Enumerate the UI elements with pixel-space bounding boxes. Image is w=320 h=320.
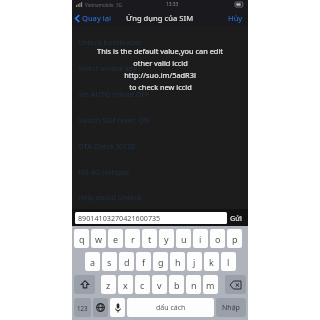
button[interactable]: x xyxy=(118,275,133,294)
button[interactable]: v xyxy=(152,275,167,294)
staticText: j xyxy=(193,256,196,268)
staticText: b xyxy=(174,279,180,291)
button[interactable]: l xyxy=(221,252,236,271)
button[interactable]: Delete xyxy=(225,275,246,294)
button[interactable]: 89014103270421600735 xyxy=(75,212,227,224)
button[interactable]: b xyxy=(169,275,184,294)
button[interactable]: i xyxy=(193,229,208,248)
button[interactable]: Nhập xyxy=(216,298,246,317)
staticText: d xyxy=(124,256,130,268)
button[interactable]: Select unlock key xyxy=(72,55,248,81)
staticText: other valid iccid xyxy=(133,58,188,68)
button[interactable]: e xyxy=(108,229,123,248)
button[interactable]: Shift xyxy=(74,275,95,294)
button[interactable]: Gửi xyxy=(227,211,245,225)
button[interactable]: Help about Unlock xyxy=(72,185,248,209)
staticText: r xyxy=(131,233,135,245)
staticText: Switch SIM reset: ON xyxy=(78,115,150,125)
staticText: 3G xyxy=(116,2,122,8)
button[interactable]: q xyxy=(74,229,89,248)
button[interactable]: f xyxy=(136,252,151,271)
staticText: Help about Unlock xyxy=(78,192,142,202)
staticText: Unlock bootloader xyxy=(78,37,142,47)
button[interactable]: m xyxy=(203,275,218,294)
staticText: Hủy xyxy=(228,13,243,23)
button[interactable]: z xyxy=(101,275,116,294)
staticText: z xyxy=(106,279,111,291)
staticText: to check new iccid xyxy=(129,82,192,92)
staticText: 123 xyxy=(77,304,88,312)
staticText: x xyxy=(123,279,128,291)
button[interactable]: u xyxy=(176,229,191,248)
button[interactable]: Set AUTO reload OFF xyxy=(72,81,248,107)
staticText: 13:33 xyxy=(166,1,179,8)
staticText: h xyxy=(175,256,181,268)
button[interactable]: p xyxy=(227,229,242,248)
staticText: OTA Check ICCID xyxy=(78,141,136,151)
button[interactable]: j xyxy=(187,252,202,271)
staticText: This is the default value,you can edit xyxy=(97,46,223,56)
staticText: m xyxy=(206,279,215,291)
button[interactable]: h xyxy=(170,252,185,271)
staticText: Select unlock key xyxy=(78,63,137,73)
staticText: Gửi xyxy=(230,213,242,223)
staticText: l xyxy=(227,256,230,268)
staticText: p xyxy=(232,233,238,245)
staticText: k xyxy=(209,256,214,268)
staticText: Quay lại xyxy=(82,13,111,23)
button[interactable]: y xyxy=(159,229,174,248)
staticText: c xyxy=(140,279,145,291)
staticText: u xyxy=(181,233,187,245)
staticText: FIX 4G Hotspot xyxy=(78,167,130,177)
button[interactable]: r xyxy=(125,229,140,248)
staticText: g xyxy=(158,256,164,268)
button[interactable]: w xyxy=(91,229,106,248)
button[interactable]: Unlock bootloader xyxy=(72,29,248,55)
button[interactable]: Quay lại xyxy=(72,11,115,25)
button[interactable]: Hủy xyxy=(223,11,248,25)
button[interactable]: t xyxy=(142,229,157,248)
staticText: y xyxy=(164,233,169,245)
staticText: 89014103270421600735 xyxy=(78,213,161,223)
button[interactable]: a xyxy=(85,252,100,271)
staticText: a xyxy=(90,256,96,268)
staticText: t xyxy=(148,233,152,245)
staticText: v xyxy=(157,279,162,291)
button[interactable]: dấu cách xyxy=(127,298,214,317)
staticText: o xyxy=(215,233,221,245)
staticText: n xyxy=(191,279,197,291)
button[interactable]: 123 xyxy=(74,298,91,317)
staticText: w xyxy=(95,233,103,245)
button[interactable]: o xyxy=(210,229,225,248)
staticText: e xyxy=(113,233,119,245)
button[interactable]: Dictate xyxy=(110,298,125,317)
button[interactable]: n xyxy=(186,275,201,294)
staticText: http://suo.im/5adR3l xyxy=(124,70,196,80)
staticText: q xyxy=(79,233,85,245)
button[interactable]: OTA Check ICCID xyxy=(72,133,248,159)
button[interactable]: Change keyboard xyxy=(93,298,108,317)
button[interactable]: d xyxy=(119,252,134,271)
button[interactable]: s xyxy=(102,252,117,271)
staticText: f xyxy=(142,256,146,268)
staticText: Vietnamobile xyxy=(85,2,114,8)
button[interactable]: c xyxy=(135,275,150,294)
button[interactable]: FIX 4G Hotspot xyxy=(72,159,248,185)
staticText: Set AUTO reload OFF xyxy=(78,89,150,99)
staticText: dấu cách xyxy=(156,303,186,313)
button[interactable]: Switch SIM reset: ON xyxy=(72,107,248,133)
staticText: i xyxy=(199,233,202,245)
button[interactable]: k xyxy=(204,252,219,271)
staticText: s xyxy=(107,256,112,268)
staticText: Ứng dụng của SIM xyxy=(126,13,194,23)
staticText: Nhập xyxy=(222,303,240,313)
button[interactable]: g xyxy=(153,252,168,271)
